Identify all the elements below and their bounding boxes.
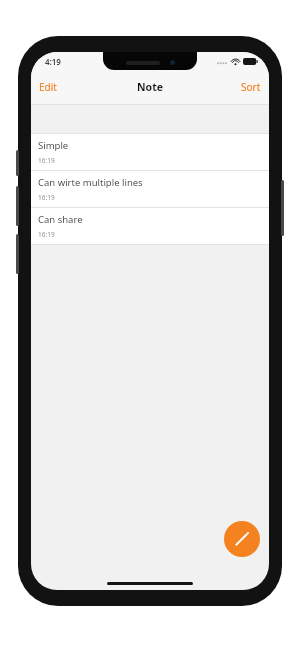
button[interactable]: Can share xyxy=(31,208,269,244)
staticText: Can wirte multiple lines xyxy=(38,176,143,189)
staticText: Note xyxy=(137,80,163,94)
staticText: Can share xyxy=(38,213,83,226)
button[interactable]: Can wirte multiple lines xyxy=(31,171,269,207)
button[interactable]: Edit xyxy=(31,74,65,100)
button[interactable]: Compose new note xyxy=(224,521,260,557)
button[interactable]: Simple xyxy=(31,134,269,170)
staticText: 16:19 xyxy=(38,193,55,202)
staticText: Simple xyxy=(38,139,69,152)
button[interactable]: Sort xyxy=(233,74,269,100)
staticText: Edit xyxy=(39,80,57,94)
staticText: 4:19 xyxy=(45,56,61,67)
staticText: 16:19 xyxy=(38,230,55,239)
staticText: Sort xyxy=(241,80,261,94)
staticText: 16:19 xyxy=(38,156,55,165)
